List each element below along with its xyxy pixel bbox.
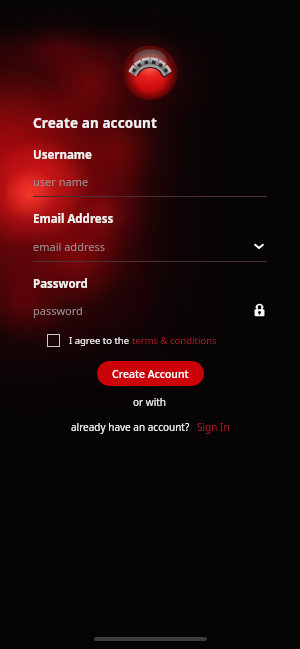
staticText: terms & conditions: [132, 334, 217, 347]
button[interactable]: Sign In: [197, 420, 230, 434]
other: Teqtro logo: [123, 46, 177, 100]
other: Expand email options: [251, 238, 267, 254]
staticText: Password: [33, 276, 88, 292]
staticText: I agree to the: [69, 334, 132, 347]
staticText: Create an account: [33, 114, 157, 132]
button[interactable]: email address: [33, 238, 267, 254]
staticText: Sign In: [197, 420, 230, 434]
staticText: Email Address: [33, 211, 114, 227]
button[interactable]: Create Account: [97, 361, 204, 386]
button[interactable]: password: [33, 303, 267, 318]
button[interactable]: I agree to the: [47, 334, 267, 347]
staticText: or with: [133, 395, 167, 409]
staticText: user name: [33, 174, 267, 189]
other: Password hidden: [252, 303, 267, 318]
staticText: Create Account: [112, 367, 189, 381]
staticText: Username: [33, 147, 92, 163]
staticText: email address: [33, 239, 251, 254]
staticText: already have an account?: [71, 420, 190, 434]
button[interactable]: user name: [33, 174, 267, 189]
staticText: password: [33, 303, 252, 318]
